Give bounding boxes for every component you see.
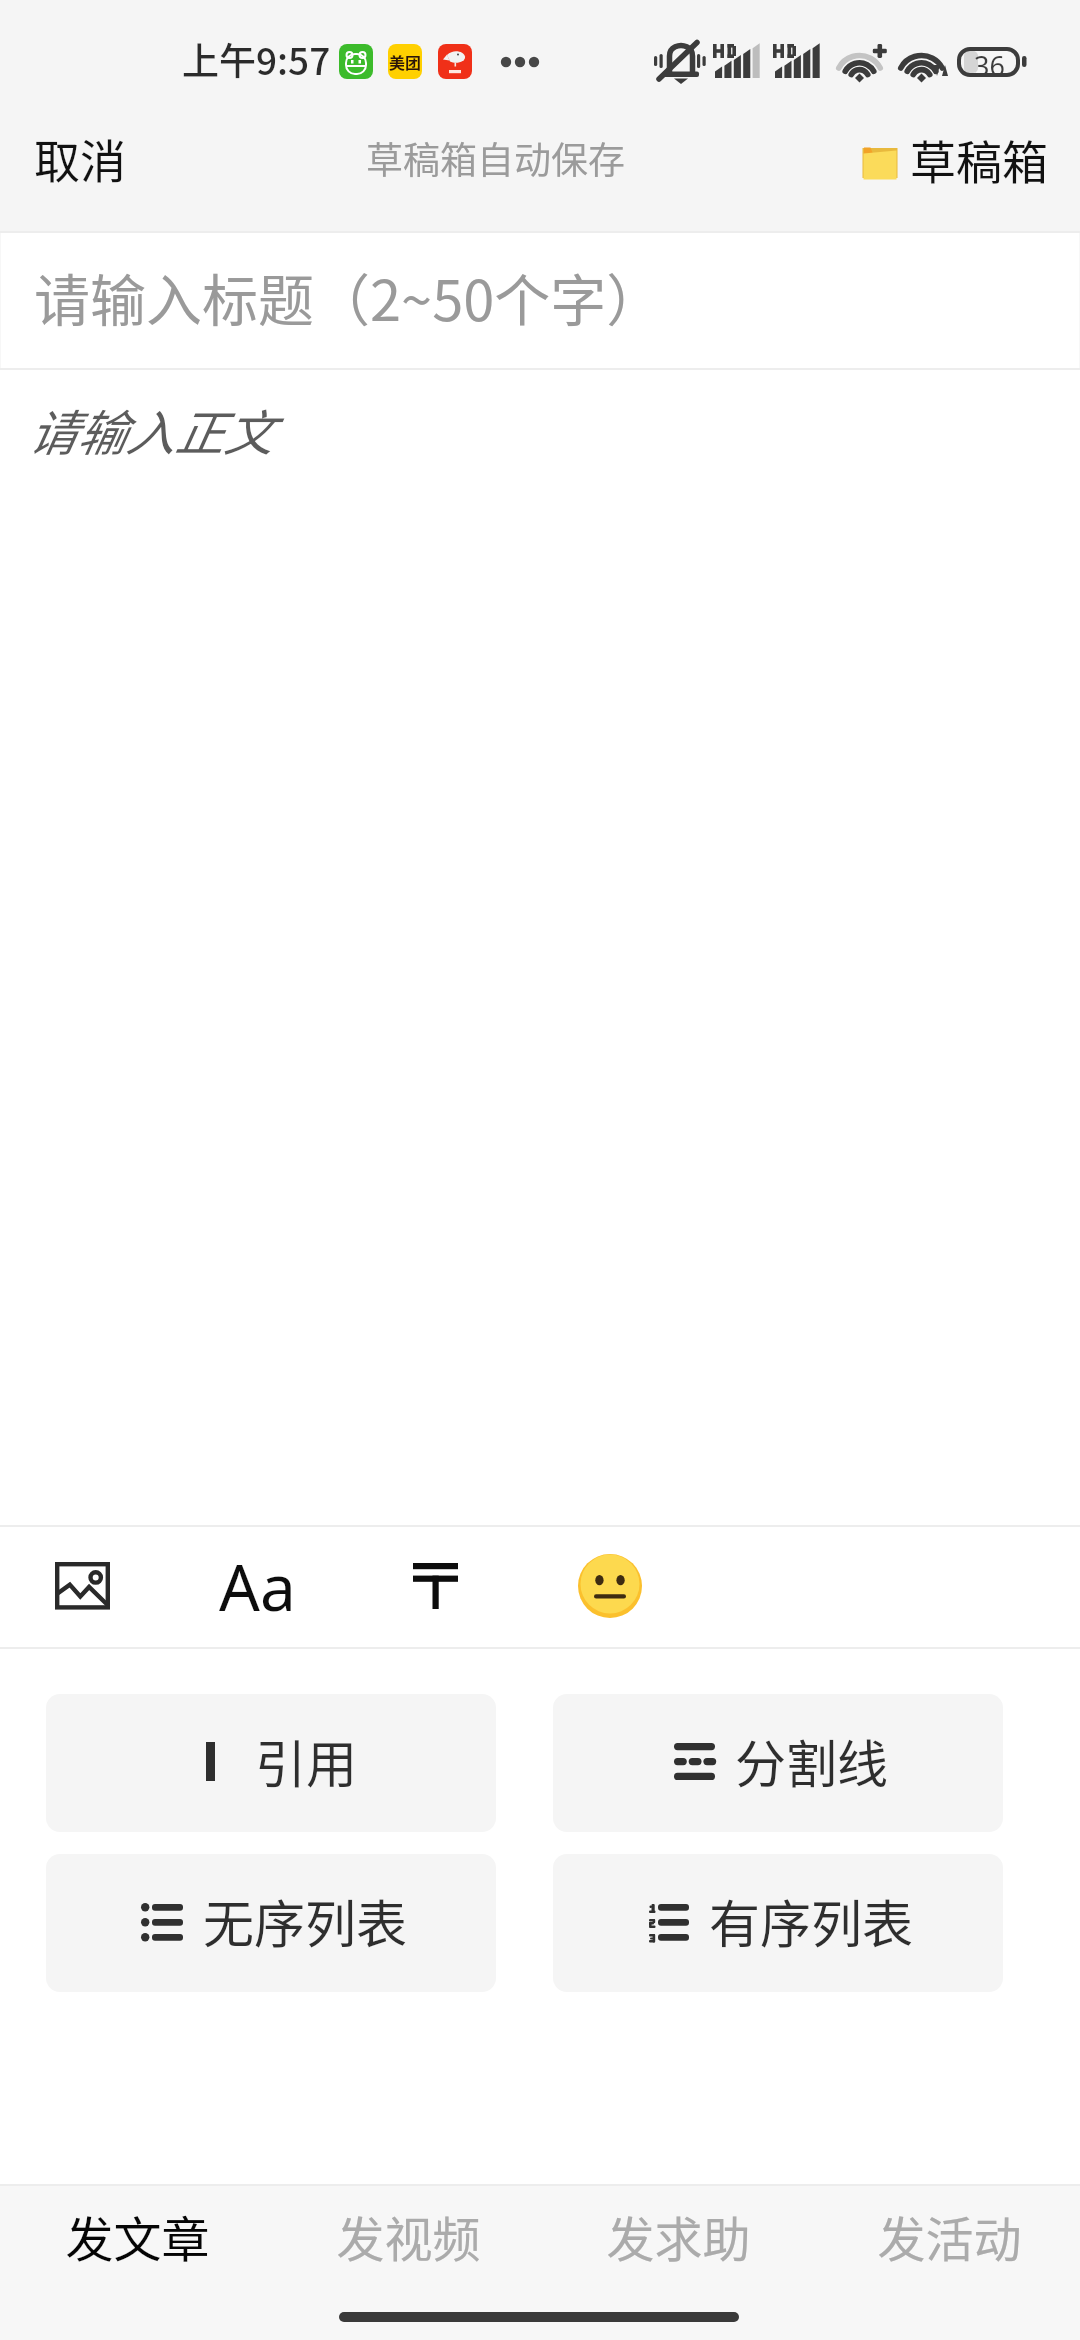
staticText: 草稿箱自动保存: [366, 131, 625, 185]
staticText: 发求助: [606, 2201, 751, 2271]
staticText: Aa: [219, 1543, 296, 1630]
button[interactable]: Text style: [205, 1538, 310, 1634]
staticText: 发活动: [877, 2201, 1022, 2271]
button[interactable]: Heading: [385, 1538, 485, 1634]
staticText: 发文章: [65, 2201, 210, 2271]
staticText: 引用: [255, 1724, 358, 1798]
button[interactable]: 引用: [46, 1694, 496, 1832]
staticText: 请输入正文: [27, 394, 273, 465]
button[interactable]: 取消: [10, 106, 150, 211]
staticText: 上午9:57: [182, 32, 331, 86]
staticText: 有序列表: [709, 1884, 914, 1958]
button[interactable]: Emoji: [562, 1538, 658, 1634]
button[interactable]: 发文章: [27, 2181, 247, 2291]
staticText: 分割线: [735, 1724, 889, 1798]
button[interactable]: 草稿箱: [845, 107, 1080, 212]
button[interactable]: 发求助: [568, 2181, 788, 2291]
staticText: 无序列表: [203, 1884, 408, 1958]
button[interactable]: 发活动: [839, 2181, 1059, 2291]
staticText: 取消: [34, 125, 126, 192]
button[interactable]: 无序列表: [46, 1854, 496, 1992]
staticText: 36: [974, 47, 1005, 77]
button[interactable]: 发视频: [298, 2181, 518, 2291]
staticText: 草稿箱: [910, 126, 1048, 193]
button[interactable]: Insert image: [32, 1538, 132, 1634]
button[interactable]: 有序列表: [553, 1854, 1003, 1992]
staticText: 美团: [389, 50, 422, 73]
button[interactable]: 分割线: [553, 1694, 1003, 1832]
staticText: 发视频: [336, 2201, 481, 2271]
staticText: 请输入标题（2~50个字）: [34, 256, 663, 337]
